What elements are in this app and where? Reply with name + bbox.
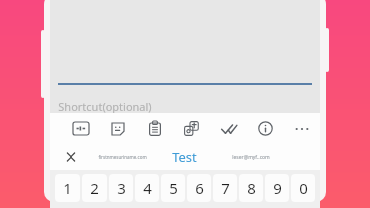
button[interactable]: 3 bbox=[109, 174, 133, 202]
staticText: 6 bbox=[195, 178, 204, 198]
button[interactable]: More options bbox=[284, 113, 320, 144]
staticText: 5 bbox=[169, 178, 178, 198]
button[interactable]: 9 bbox=[265, 174, 289, 202]
button[interactable]: Translate bbox=[173, 113, 210, 144]
staticText: 9 bbox=[273, 178, 282, 198]
button[interactable]: 6 bbox=[187, 174, 211, 202]
button[interactable]: 2 bbox=[82, 174, 107, 202]
button[interactable]: Stickers bbox=[99, 113, 136, 144]
staticText: Shortcut(optional) bbox=[58, 99, 152, 114]
button[interactable]: GIF bbox=[62, 113, 99, 144]
button[interactable]: Spell check bbox=[210, 113, 247, 144]
staticText: Test bbox=[172, 148, 197, 166]
button[interactable]: 5 bbox=[161, 174, 185, 202]
staticText: 7 bbox=[221, 178, 230, 198]
staticText: 1 bbox=[63, 178, 72, 198]
staticText: 2 bbox=[90, 178, 99, 198]
button[interactable]: firstnmesuriname.com bbox=[98, 154, 147, 160]
button[interactable]: Test bbox=[172, 148, 197, 166]
button[interactable]: Close suggestions bbox=[62, 148, 80, 166]
button[interactable]: 8 bbox=[239, 174, 263, 202]
staticText: 8 bbox=[247, 178, 256, 198]
staticText: 0 bbox=[299, 178, 308, 198]
button[interactable]: 7 bbox=[213, 174, 237, 202]
button[interactable]: Clipboard bbox=[136, 113, 173, 144]
staticText: 3 bbox=[117, 178, 126, 198]
button[interactable]: 1 bbox=[55, 174, 80, 202]
button[interactable]: 0 bbox=[291, 174, 315, 202]
staticText: firstnmesuriname.com bbox=[98, 154, 147, 160]
button[interactable]: leser@myf..com bbox=[232, 154, 270, 161]
staticText: leser@myf..com bbox=[232, 154, 270, 161]
button[interactable]: 4 bbox=[135, 174, 159, 202]
button[interactable]: Info bbox=[247, 113, 284, 144]
staticText: 4 bbox=[143, 178, 152, 198]
